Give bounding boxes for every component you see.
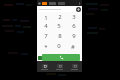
button[interactable]: 7 bbox=[39, 32, 52, 42]
staticText: 1 bbox=[44, 14, 48, 22]
staticText: 0 bbox=[57, 42, 61, 50]
staticText: * bbox=[44, 43, 48, 51]
button[interactable]: * bbox=[39, 42, 52, 52]
button[interactable]: 6 bbox=[66, 22, 80, 32]
button[interactable]: 3 bbox=[66, 13, 80, 22]
button[interactable]: 0 bbox=[52, 42, 66, 52]
button[interactable]: Recents bbox=[52, 61, 67, 72]
staticText: 5 bbox=[57, 22, 61, 30]
staticText: 4 bbox=[44, 22, 48, 30]
button[interactable]: Video call bbox=[76, 7, 81, 12]
button[interactable]: Keypad bbox=[37, 61, 52, 72]
button[interactable]: Contacts bbox=[67, 61, 82, 72]
button[interactable]: Call bbox=[42, 54, 80, 61]
button[interactable]: 8 bbox=[52, 32, 66, 42]
staticText: 3 bbox=[72, 13, 76, 21]
button[interactable]: # bbox=[66, 42, 80, 52]
button[interactable]: 1 bbox=[39, 13, 52, 22]
button[interactable]: Video call bbox=[37, 6, 82, 12]
staticText: 7 bbox=[44, 32, 48, 40]
staticText: # bbox=[71, 43, 75, 51]
button[interactable]: 4 bbox=[39, 22, 52, 32]
button[interactable]: 5 bbox=[52, 22, 66, 32]
staticText: 6 bbox=[72, 22, 76, 30]
staticText: 2 bbox=[58, 13, 62, 21]
button[interactable]: Menu bbox=[38, 2, 41, 5]
staticText: 8 bbox=[58, 32, 62, 40]
button[interactable]: 2 bbox=[52, 13, 66, 22]
button[interactable]: Keypad tab bbox=[42, 2, 47, 5]
button[interactable]: 9 bbox=[66, 32, 80, 42]
button[interactable]: SIM bbox=[38, 56, 42, 60]
staticText: 9 bbox=[72, 32, 76, 40]
button[interactable]: More options bbox=[78, 2, 81, 5]
